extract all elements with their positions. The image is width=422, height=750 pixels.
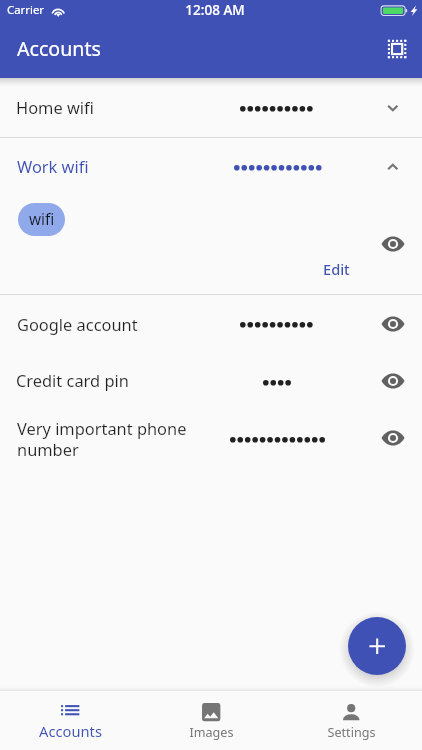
button[interactable]: Settings <box>281 691 422 750</box>
staticText: Home wifi <box>16 96 94 118</box>
button[interactable]: Show password <box>369 220 417 268</box>
button[interactable]: Add account <box>348 617 406 675</box>
button[interactable]: Show password <box>369 414 417 462</box>
staticText: Very important phone <box>17 417 187 439</box>
staticText: Work wifi <box>17 155 89 177</box>
staticText: 12:08 AM <box>145 1 285 19</box>
button[interactable]: wifi <box>18 203 65 236</box>
button[interactable]: Images <box>141 691 282 750</box>
staticText: Accounts <box>17 35 101 62</box>
button[interactable]: Show password <box>369 357 417 405</box>
staticText: Images <box>141 724 282 741</box>
button[interactable]: Select all <box>373 25 421 73</box>
button[interactable]: Accounts <box>0 691 141 750</box>
staticText: Credit card pin <box>16 369 129 391</box>
button[interactable]: Show password <box>369 300 417 348</box>
button[interactable]: Home wifi <box>0 78 422 137</box>
staticText: Accounts <box>0 721 141 741</box>
staticText: Google account <box>17 313 138 335</box>
staticText: Edit <box>323 259 350 279</box>
staticText: Carrier <box>7 2 45 18</box>
button[interactable]: Credit card pin <box>0 352 422 408</box>
staticText: Settings <box>281 724 422 741</box>
button[interactable]: Edit <box>313 251 362 287</box>
button[interactable]: Google account <box>0 295 422 352</box>
button[interactable]: Very important phone <box>0 409 422 468</box>
staticText: number <box>17 438 79 460</box>
button[interactable]: Work wifi <box>0 138 422 196</box>
staticText: wifi <box>29 209 55 230</box>
